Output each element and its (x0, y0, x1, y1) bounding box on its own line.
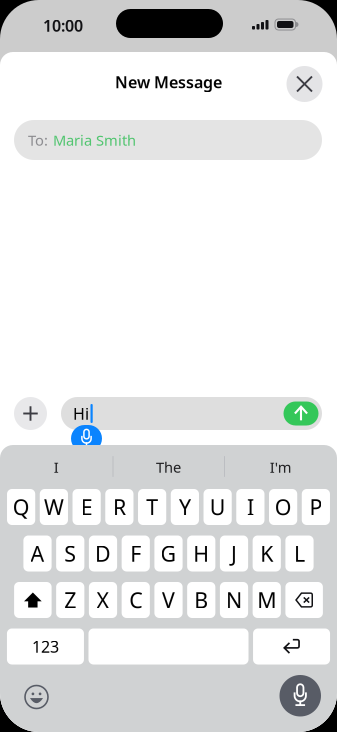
button[interactable]: D (89, 535, 117, 571)
button[interactable]: I'm (225, 445, 337, 489)
button[interactable]: A (23, 535, 52, 571)
button[interactable]: Y (171, 489, 199, 525)
button[interactable]: Add (14, 397, 47, 430)
button[interactable]: Emoji (25, 685, 48, 708)
staticText: B (194, 586, 208, 614)
button[interactable]: I (0, 445, 112, 489)
button[interactable]: V (154, 582, 183, 618)
button[interactable]: E (72, 489, 101, 525)
staticText: M (257, 586, 276, 614)
staticText: R (113, 493, 126, 521)
button[interactable]: Z (56, 582, 84, 618)
button[interactable]: 123 (7, 628, 84, 664)
staticText: N (226, 586, 242, 614)
button[interactable]: R (105, 489, 133, 525)
staticText: L (294, 539, 305, 568)
staticText: V (162, 586, 175, 614)
staticText: Y (179, 493, 191, 521)
staticText: T (146, 493, 158, 521)
staticText: G (160, 539, 176, 568)
button[interactable]: Send (283, 401, 318, 425)
staticText: Z (64, 586, 76, 614)
staticText: S (64, 539, 76, 568)
button[interactable]: Q (7, 489, 35, 525)
button[interactable]: L (285, 535, 314, 571)
staticText: E (81, 493, 93, 521)
button[interactable]: C (122, 582, 150, 618)
button[interactable]: Return (253, 628, 330, 664)
staticText: P (309, 493, 322, 521)
button[interactable]: J (220, 535, 248, 571)
staticText: F (130, 539, 141, 568)
staticText: X (96, 586, 109, 614)
button[interactable]: I (236, 489, 264, 525)
button[interactable]: F (122, 535, 150, 571)
button[interactable] (88, 628, 248, 664)
staticText: H (193, 539, 209, 568)
staticText: To: (28, 130, 48, 150)
staticText: The (156, 457, 181, 477)
staticText: Maria Smith (53, 130, 136, 150)
button[interactable]: M (253, 582, 281, 618)
staticText: U (210, 493, 226, 521)
staticText: I (54, 457, 59, 477)
staticText: I'm (270, 457, 292, 477)
staticText: C (129, 586, 142, 614)
button[interactable]: S (56, 535, 84, 571)
staticText: K (260, 539, 273, 568)
staticText: 123 (32, 636, 59, 657)
button[interactable]: Close (286, 66, 322, 102)
staticText: New Message (115, 71, 222, 93)
button[interactable]: G (154, 535, 183, 571)
button[interactable]: O (269, 489, 297, 525)
staticText: A (30, 539, 44, 568)
button[interactable]: T (138, 489, 166, 525)
button[interactable]: K (253, 535, 281, 571)
button[interactable]: Delete (285, 582, 323, 618)
staticText: O (275, 493, 292, 521)
staticText: Hi (73, 403, 89, 424)
staticText: W (44, 493, 64, 521)
button[interactable]: P (302, 489, 330, 525)
button[interactable]: Dictation (279, 675, 321, 716)
staticText: I (247, 493, 254, 521)
button[interactable]: N (220, 582, 248, 618)
button[interactable]: H (187, 535, 215, 571)
staticText: J (231, 539, 237, 568)
button[interactable]: Shift (14, 582, 52, 618)
button[interactable]: U (203, 489, 232, 525)
button[interactable]: W (40, 489, 68, 525)
button[interactable]: The (112, 445, 225, 489)
button[interactable]: B (187, 582, 215, 618)
staticText: 10:00 (43, 15, 83, 36)
button[interactable]: X (89, 582, 117, 618)
staticText: D (95, 539, 111, 568)
staticText: Q (13, 493, 30, 521)
